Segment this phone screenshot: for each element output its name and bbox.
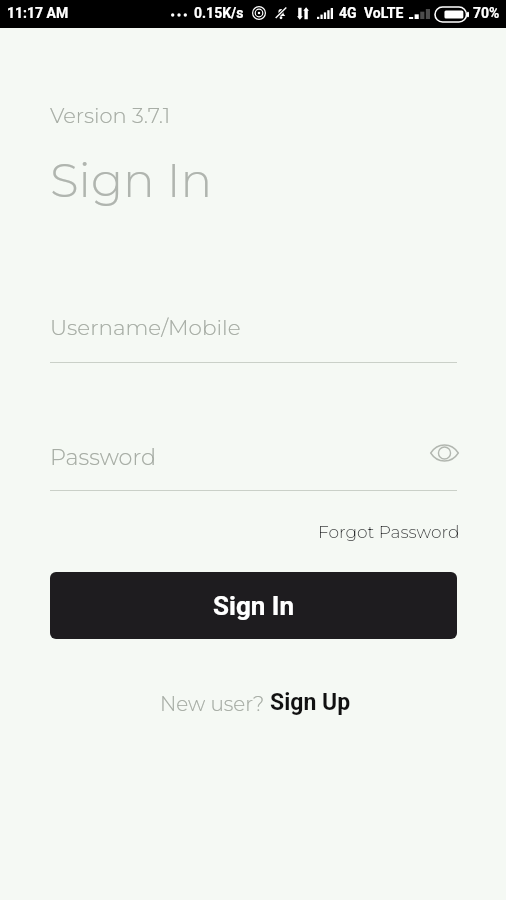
staticText: Sign In xyxy=(213,591,294,621)
staticText: Sign In xyxy=(50,152,213,209)
staticText: Version 3.7.1 xyxy=(50,103,171,129)
staticText: 4G xyxy=(339,5,357,21)
staticText: 0.15K/s xyxy=(194,5,244,21)
staticText: New user? xyxy=(160,692,270,716)
staticText: VoLTE xyxy=(364,5,404,21)
button[interactable]: Show password xyxy=(421,434,467,472)
staticText: Username/Mobile xyxy=(50,314,241,340)
staticText: Password xyxy=(50,443,156,470)
staticText: Sign Up xyxy=(270,689,351,716)
staticText: 70% xyxy=(473,5,500,21)
button[interactable]: Forgot Password xyxy=(318,522,460,543)
staticText: 11:17 AM xyxy=(7,5,69,21)
button[interactable]: Sign In xyxy=(50,572,457,639)
button[interactable]: New user? xyxy=(160,689,351,716)
